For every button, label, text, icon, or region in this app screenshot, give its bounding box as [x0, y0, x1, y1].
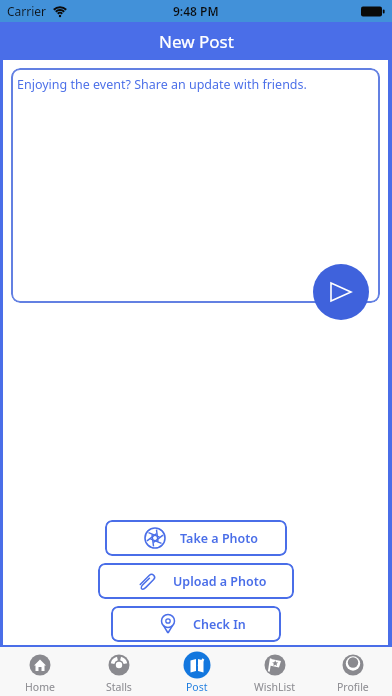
button[interactable]: Check In	[111, 606, 281, 642]
staticText: Upload a Photo	[173, 573, 267, 590]
button[interactable]: Home	[0, 647, 79, 696]
staticText: 9:48 PM	[173, 3, 219, 19]
button[interactable]: Upload a Photo	[98, 563, 294, 599]
button[interactable]: Take a Photo	[105, 520, 287, 556]
button[interactable]: Post	[158, 647, 236, 696]
staticText: Enjoying the event? Share an update with…	[17, 76, 307, 93]
staticText: Home	[25, 680, 55, 694]
staticText: Post	[186, 680, 208, 694]
staticText: Profile	[337, 680, 369, 694]
button[interactable]: WishList	[236, 647, 314, 696]
staticText: WishList	[254, 680, 296, 694]
button[interactable]: Stalls	[79, 647, 158, 696]
button[interactable]	[313, 264, 369, 320]
button[interactable]: Profile	[314, 647, 392, 696]
staticText: Check In	[193, 616, 246, 633]
staticText: New Post	[159, 30, 234, 53]
staticText: Take a Photo	[180, 530, 259, 547]
staticText: Carrier	[7, 3, 47, 19]
staticText: Stalls	[106, 680, 132, 694]
